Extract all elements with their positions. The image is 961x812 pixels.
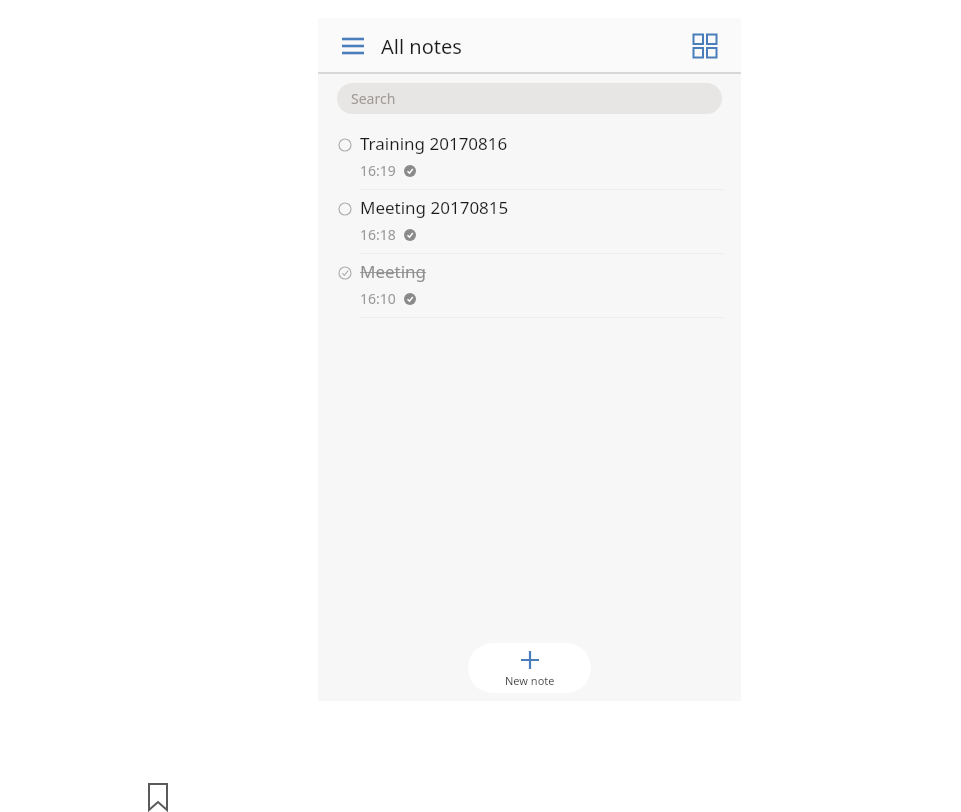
- button[interactable]: Bookmark: [143, 782, 173, 812]
- staticText: New note: [505, 673, 555, 688]
- staticText: 16:19: [360, 161, 396, 180]
- staticText: 16:10: [360, 289, 396, 308]
- button[interactable]: Menu: [338, 31, 368, 61]
- button[interactable]: Meeting: [318, 254, 741, 318]
- button[interactable]: New note: [468, 643, 591, 693]
- staticText: 16:18: [360, 225, 396, 244]
- staticText: Search: [351, 89, 396, 108]
- button[interactable]: Meeting 20170815: [318, 190, 741, 254]
- button[interactable]: Grid view: [689, 30, 721, 62]
- staticText: Meeting: [360, 260, 427, 283]
- staticText: Training 20170816: [360, 132, 508, 155]
- button[interactable]: Search: [337, 83, 722, 114]
- staticText: All notes: [381, 33, 462, 60]
- button[interactable]: Training 20170816: [318, 126, 741, 190]
- staticText: Meeting 20170815: [360, 196, 509, 219]
